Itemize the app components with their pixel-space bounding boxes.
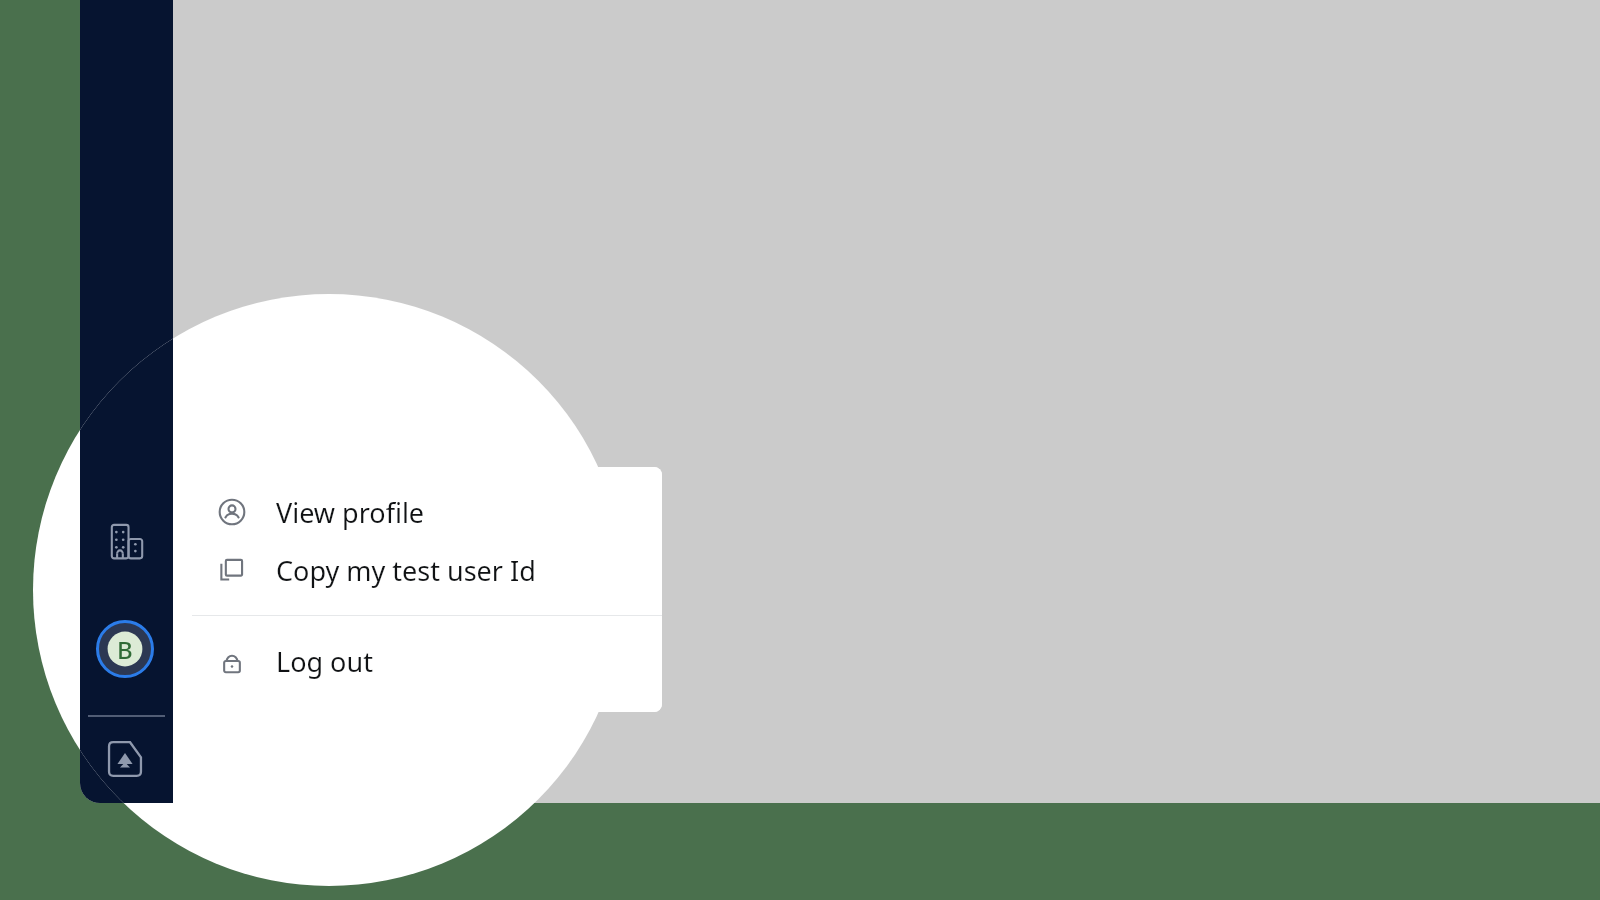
- staticText: View profile: [276, 494, 425, 531]
- staticText: Copy my test user Id: [276, 552, 536, 589]
- button[interactable]: Organisation: [101, 518, 152, 566]
- button[interactable]: App: [101, 735, 149, 783]
- button[interactable]: Log out: [192, 632, 662, 690]
- staticText: Log out: [276, 643, 373, 680]
- staticText: Copy my test user Id: [276, 552, 536, 589]
- staticText: View profile: [276, 494, 425, 531]
- button[interactable]: Your profile: [96, 620, 154, 678]
- button[interactable]: Copy my test user Id: [192, 541, 662, 599]
- staticText: B: [117, 633, 133, 666]
- button[interactable]: Log out: [192, 632, 662, 690]
- button[interactable]: View profile: [192, 483, 662, 541]
- staticText: Log out: [276, 643, 373, 680]
- button[interactable]: Copy my test user Id: [192, 541, 662, 599]
- button[interactable]: View profile: [192, 483, 662, 541]
